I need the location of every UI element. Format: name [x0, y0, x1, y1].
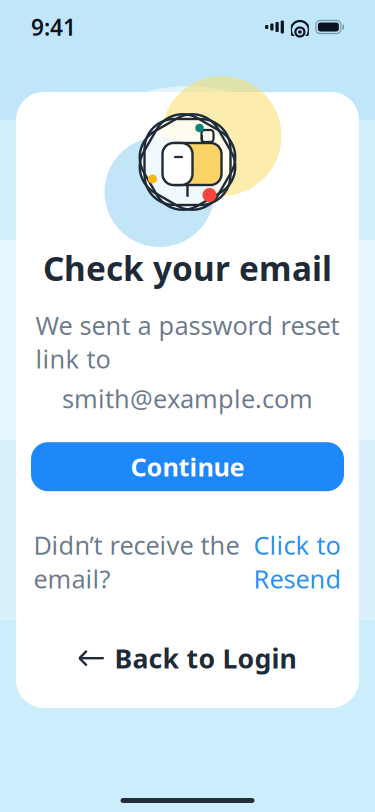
staticText: Continue — [130, 450, 244, 483]
staticText: smith@example.com — [62, 381, 313, 415]
staticText: Click to Resend — [253, 528, 341, 595]
staticText: Back to Login — [114, 640, 296, 676]
button[interactable]: Back to Login — [68, 636, 306, 680]
staticText: We sent a password reset link to — [35, 308, 339, 376]
staticText: Didn’t receive the email? — [33, 528, 239, 595]
staticText: Check your email — [43, 246, 332, 290]
button[interactable]: Continue — [31, 442, 344, 491]
staticText: 9:41 — [31, 12, 76, 42]
button[interactable]: Click to Resend — [239, 528, 341, 595]
